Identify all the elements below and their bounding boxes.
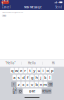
- staticText: s: [18, 75, 20, 80]
- staticText: z: [18, 82, 20, 87]
- button[interactable]: w: [15, 68, 18, 73]
- staticText: Cancel: [2, 5, 11, 9]
- staticText: q: [11, 68, 13, 73]
- staticText: p: [51, 68, 53, 73]
- button[interactable]: f: [26, 75, 29, 80]
- button[interactable]: d: [21, 75, 25, 80]
- staticText: r: [24, 68, 26, 73]
- staticText: x: [22, 82, 24, 87]
- staticText: l: [49, 75, 50, 80]
- button[interactable]: c: [26, 82, 29, 87]
- button[interactable]: Send: [55, 5, 63, 10]
- staticText: Send: [55, 5, 62, 9]
- button[interactable]: Switch keyboard: [18, 88, 22, 94]
- button[interactable]: x: [21, 82, 25, 87]
- button[interactable]: r: [23, 68, 27, 73]
- staticText: h: [35, 75, 37, 80]
- button[interactable]: ⌫: [48, 82, 53, 87]
- button[interactable]: “Hello”: [0, 60, 21, 66]
- staticText: o: [46, 68, 48, 73]
- button[interactable]: i: [41, 68, 45, 73]
- staticText: Hi: [52, 61, 55, 65]
- staticText: y: [33, 68, 35, 73]
- staticText: w: [15, 68, 18, 73]
- button[interactable]: s: [17, 75, 21, 80]
- button[interactable]: q: [10, 68, 14, 73]
- button[interactable]: 123: [12, 88, 18, 94]
- button[interactable]: ⇧: [11, 82, 16, 87]
- staticText: f: [27, 75, 28, 80]
- staticText: return: [42, 89, 51, 93]
- button[interactable]: a: [12, 75, 16, 80]
- staticText: To: jane.appleseed@icloud.com: [2, 12, 23, 13]
- button[interactable]: z: [17, 82, 21, 87]
- button[interactable]: return: [42, 88, 52, 94]
- button[interactable]: n: [39, 82, 43, 87]
- staticText: ⌫: [48, 83, 52, 86]
- staticText: d: [22, 75, 24, 80]
- staticText: u: [38, 68, 40, 73]
- staticText: “Hello”: [6, 61, 16, 65]
- staticText: m: [43, 82, 47, 87]
- button[interactable]: space: [23, 88, 41, 94]
- staticText: n: [40, 82, 42, 87]
- staticText: 14:01: [2, 0, 9, 6]
- button[interactable]: p: [50, 68, 54, 73]
- staticText: a: [13, 75, 15, 80]
- button[interactable]: Cancel: [1, 5, 11, 10]
- staticText: Hello: [3, 15, 6, 17]
- staticText: Hello: [28, 61, 36, 65]
- staticText: 123: [13, 88, 17, 95]
- button[interactable]: o: [46, 68, 49, 73]
- button[interactable]: Hello: [21, 60, 43, 66]
- staticText: New Message: [24, 5, 42, 9]
- button[interactable]: v: [30, 82, 34, 87]
- staticText: e: [20, 68, 22, 73]
- staticText: v: [31, 82, 33, 87]
- button[interactable]: e: [19, 68, 23, 73]
- button[interactable]: Hi: [43, 60, 64, 66]
- button[interactable]: t: [28, 68, 32, 73]
- button[interactable]: h: [34, 75, 38, 80]
- button[interactable]: u: [37, 68, 40, 73]
- staticText: b: [35, 82, 37, 87]
- staticText: t: [29, 68, 30, 73]
- button[interactable]: k: [43, 75, 47, 80]
- staticText: ⇧: [13, 83, 15, 86]
- staticText: k: [44, 75, 46, 80]
- staticText: space: [29, 89, 36, 93]
- staticText: i: [43, 68, 44, 73]
- button[interactable]: b: [34, 82, 38, 87]
- button[interactable]: l: [48, 75, 52, 80]
- button[interactable]: g: [30, 75, 34, 80]
- button[interactable]: m: [43, 82, 47, 87]
- button[interactable]: j: [39, 75, 43, 80]
- staticText: g: [31, 75, 33, 80]
- staticText: c: [27, 82, 29, 87]
- button[interactable]: y: [32, 68, 36, 73]
- staticText: j: [40, 75, 41, 80]
